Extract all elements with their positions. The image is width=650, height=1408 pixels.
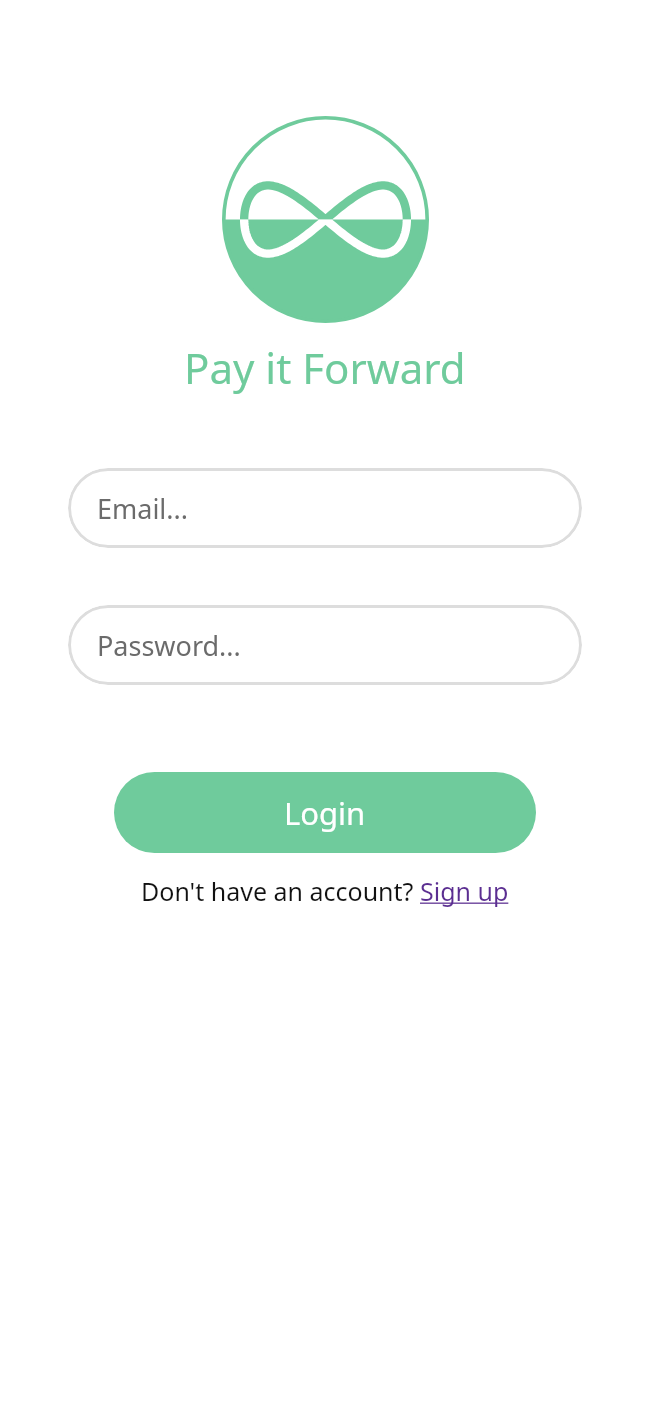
- staticText: Sign up: [420, 874, 509, 908]
- button[interactable]: Sign up: [420, 874, 509, 908]
- button[interactable]: Email...: [68, 468, 582, 548]
- staticText: Don't have an account?: [141, 874, 420, 908]
- button[interactable]: Login: [114, 772, 536, 853]
- other: Pay it Forward logo: [222, 116, 429, 323]
- staticText: Pay it Forward: [184, 339, 466, 396]
- staticText: Password...: [97, 627, 241, 664]
- staticText: Login: [284, 792, 366, 834]
- button[interactable]: Password...: [68, 605, 582, 685]
- staticText: Email...: [97, 490, 189, 527]
